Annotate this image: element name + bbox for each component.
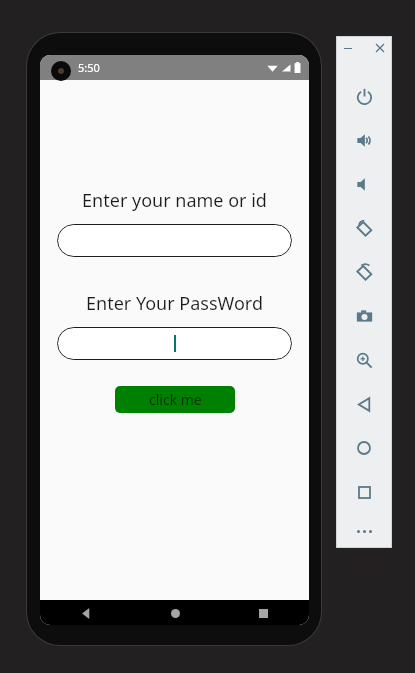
- button[interactable]: Power: [342, 74, 386, 118]
- button[interactable]: Recent apps: [342, 470, 386, 514]
- button[interactable]: Volume up: [342, 118, 386, 162]
- button[interactable]: Take screenshot: [342, 294, 386, 338]
- button[interactable]: Recent apps: [251, 601, 275, 625]
- button[interactable]: Rotate left: [342, 206, 386, 250]
- staticText: 5:50: [78, 60, 100, 75]
- button[interactable]: Back: [74, 601, 98, 625]
- button[interactable]: [57, 327, 292, 360]
- button[interactable]: Home: [342, 426, 386, 470]
- button[interactable]: click me: [115, 386, 235, 413]
- button[interactable]: Rotate right: [342, 250, 386, 294]
- button[interactable]: Close: [371, 39, 389, 57]
- button[interactable]: Volume down: [342, 162, 386, 206]
- button[interactable]: More: [342, 514, 386, 548]
- button[interactable]: Minimize: [339, 39, 357, 57]
- button[interactable]: [57, 224, 292, 257]
- staticText: click me: [149, 390, 202, 409]
- staticText: Enter Your PassWord: [86, 291, 263, 316]
- staticText: Enter your name or id: [82, 188, 267, 213]
- button[interactable]: Zoom: [342, 338, 386, 382]
- button[interactable]: Home: [163, 601, 187, 625]
- button[interactable]: Back: [342, 382, 386, 426]
